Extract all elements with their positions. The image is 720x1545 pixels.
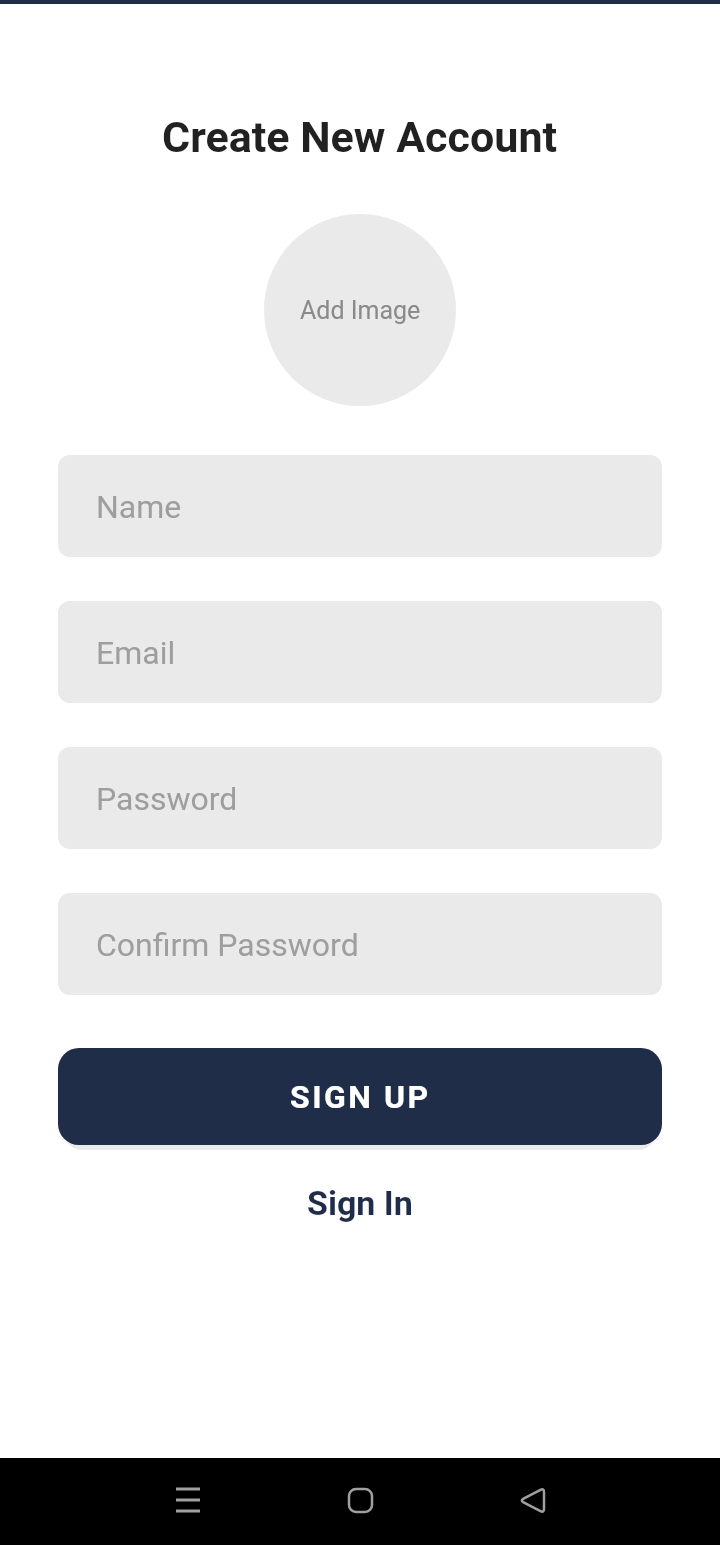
button[interactable]: Sign In — [307, 1183, 413, 1223]
staticText: SIGN UP — [290, 1078, 431, 1116]
staticText: Name — [96, 488, 182, 526]
button[interactable]: SIGN UP — [58, 1048, 662, 1145]
button[interactable] — [160, 1473, 216, 1529]
staticText: Email — [96, 634, 176, 672]
staticText: Create New Account — [162, 112, 558, 162]
button[interactable] — [504, 1473, 560, 1529]
button[interactable]: Add Image — [264, 214, 456, 406]
staticText: Confirm Password — [96, 926, 359, 964]
staticText: Sign In — [307, 1183, 413, 1223]
button[interactable] — [332, 1473, 388, 1529]
button[interactable]: Password — [58, 747, 662, 849]
staticText: Add Image — [300, 296, 421, 325]
button[interactable]: Confirm Password — [58, 893, 662, 995]
staticText: Password — [96, 780, 238, 818]
button[interactable]: Name — [58, 455, 662, 557]
button[interactable]: Email — [58, 601, 662, 703]
